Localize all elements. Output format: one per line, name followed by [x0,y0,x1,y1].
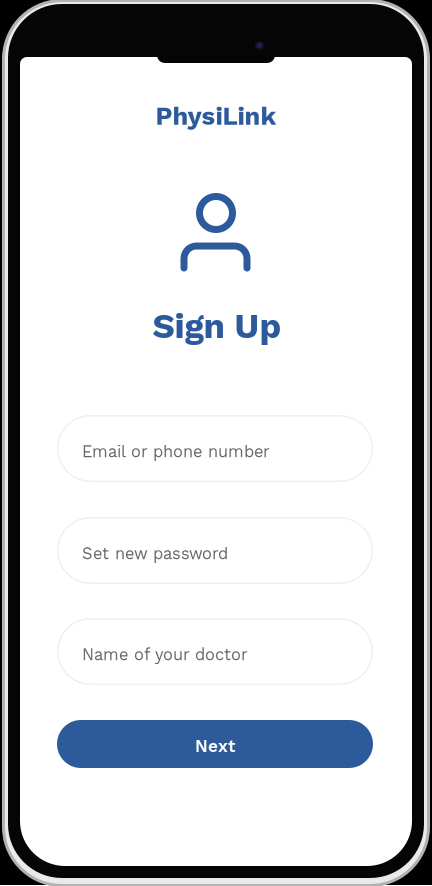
button[interactable]: Set new password [57,517,373,584]
staticText: Set new password [82,544,228,563]
button[interactable]: Name of your doctor [57,618,373,685]
button[interactable]: Next [57,720,373,768]
staticText: Sign Up [152,306,281,346]
button[interactable]: Email or phone number [57,415,373,482]
staticText: Next [195,736,235,756]
staticText: Email or phone number [82,442,270,461]
staticText: Name of your doctor [82,645,248,664]
staticText: PhysiLink [155,101,276,131]
